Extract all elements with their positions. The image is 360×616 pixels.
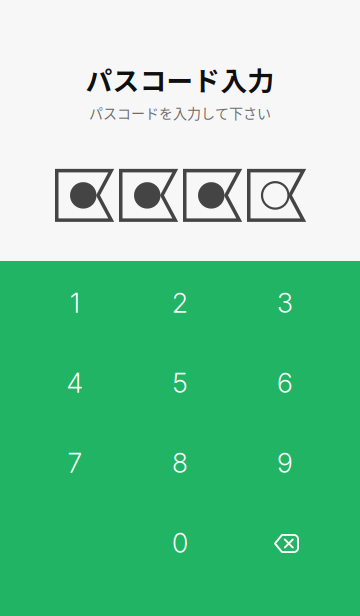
- staticText: 6: [277, 367, 293, 399]
- staticText: 0: [172, 527, 188, 559]
- button[interactable]: 0: [127, 503, 232, 583]
- staticText: パスコード入力: [85, 60, 274, 99]
- staticText: パスコードを入力して下さい: [89, 103, 271, 123]
- button[interactable]: 4: [22, 343, 127, 423]
- staticText: 2: [172, 287, 188, 319]
- button[interactable]: 9: [232, 423, 337, 503]
- button[interactable]: Delete: [232, 503, 337, 583]
- staticText: 3: [277, 287, 293, 319]
- staticText: 4: [66, 367, 83, 399]
- staticText: 5: [172, 367, 187, 399]
- button[interactable]: 5: [127, 343, 232, 423]
- button[interactable]: 7: [22, 423, 127, 503]
- staticText: 1: [70, 287, 80, 319]
- button[interactable]: 3: [232, 263, 337, 343]
- staticText: 8: [172, 447, 188, 479]
- button[interactable]: 2: [127, 263, 232, 343]
- staticText: 9: [277, 447, 293, 479]
- button[interactable]: 6: [232, 343, 337, 423]
- staticText: 7: [67, 447, 82, 479]
- button[interactable]: 1: [22, 263, 127, 343]
- button[interactable]: 8: [127, 423, 232, 503]
